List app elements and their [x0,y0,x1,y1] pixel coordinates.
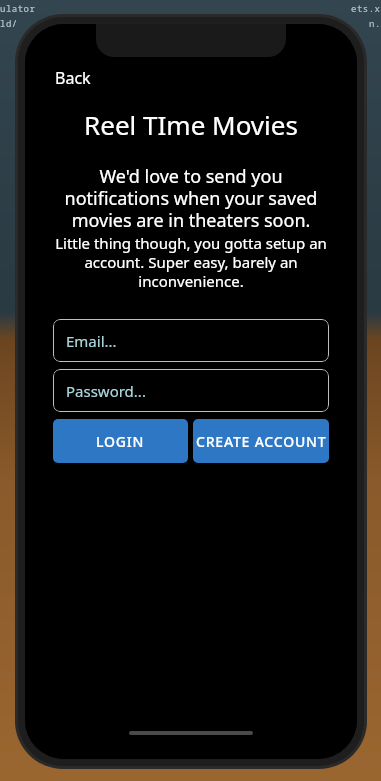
staticText: ld/ [0,17,18,29]
staticText: Little thing though, you gotta setup an … [53,233,329,291]
staticText: We'd love to send you notifications when… [53,164,329,233]
staticText: ulator [0,2,36,14]
button[interactable]: Password... [53,369,329,412]
staticText: CREATE ACCOUNT [196,432,327,451]
staticText: Back [55,67,91,89]
staticText: Password... [66,381,146,401]
button[interactable]: Email... [53,319,329,362]
staticText: ets.x [351,2,381,14]
staticText: Reel TIme Movies [53,107,329,142]
staticText: n. [369,17,381,29]
button[interactable]: Back [53,65,93,91]
button[interactable]: LOGIN [53,419,188,463]
button[interactable]: CREATE ACCOUNT [193,419,329,463]
staticText: LOGIN [96,432,145,451]
staticText: Email... [66,331,117,351]
